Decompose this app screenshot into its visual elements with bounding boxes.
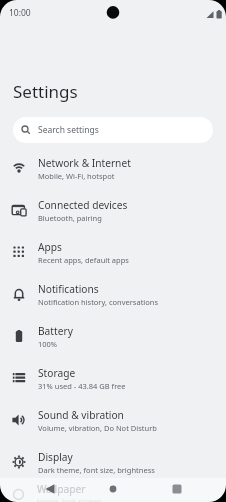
button[interactable]: Network & Internet [0,147,226,189]
button[interactable]: Connected devices [0,189,226,231]
button[interactable] [76,478,151,502]
button[interactable]: Storage [0,357,226,399]
button[interactable]: Search settings [13,117,213,143]
staticText: Notifications [38,282,99,296]
staticText: Storage [38,366,76,380]
button[interactable] [151,478,226,502]
staticText: Network & Internet [38,156,131,170]
button[interactable]: Battery [0,315,226,357]
staticText: Wallpaper [37,482,86,496]
staticText: Volume, vibration, Do Not Disturb [38,423,157,433]
staticText: Home, lock screen [37,496,102,502]
button[interactable]: Notifications [0,273,226,315]
staticText: Dark theme, font size, brightness [38,465,155,475]
staticText: 31% used - 43.84 GB free [38,381,126,391]
staticText: 10:00 [9,7,31,19]
button[interactable]: Apps [0,231,226,273]
staticText: Battery [38,324,73,338]
staticText: Connected devices [38,198,128,212]
staticText: Search settings [38,124,99,136]
staticText: Bluetooth, pairing [38,213,102,223]
staticText: 100% [38,339,58,349]
staticText: Mobile, Wi-Fi, hotspot [38,171,115,181]
staticText: Notification history, conversations [38,297,159,307]
staticText: Sound & vibration [38,408,124,422]
staticText: Settings [13,80,78,103]
button[interactable]: Display [0,441,226,483]
button[interactable]: Sound & vibration [0,399,226,441]
staticText: Display [38,450,73,464]
staticText: Recent apps, default apps [38,255,129,265]
staticText: Apps [38,240,62,254]
button[interactable] [0,478,76,502]
